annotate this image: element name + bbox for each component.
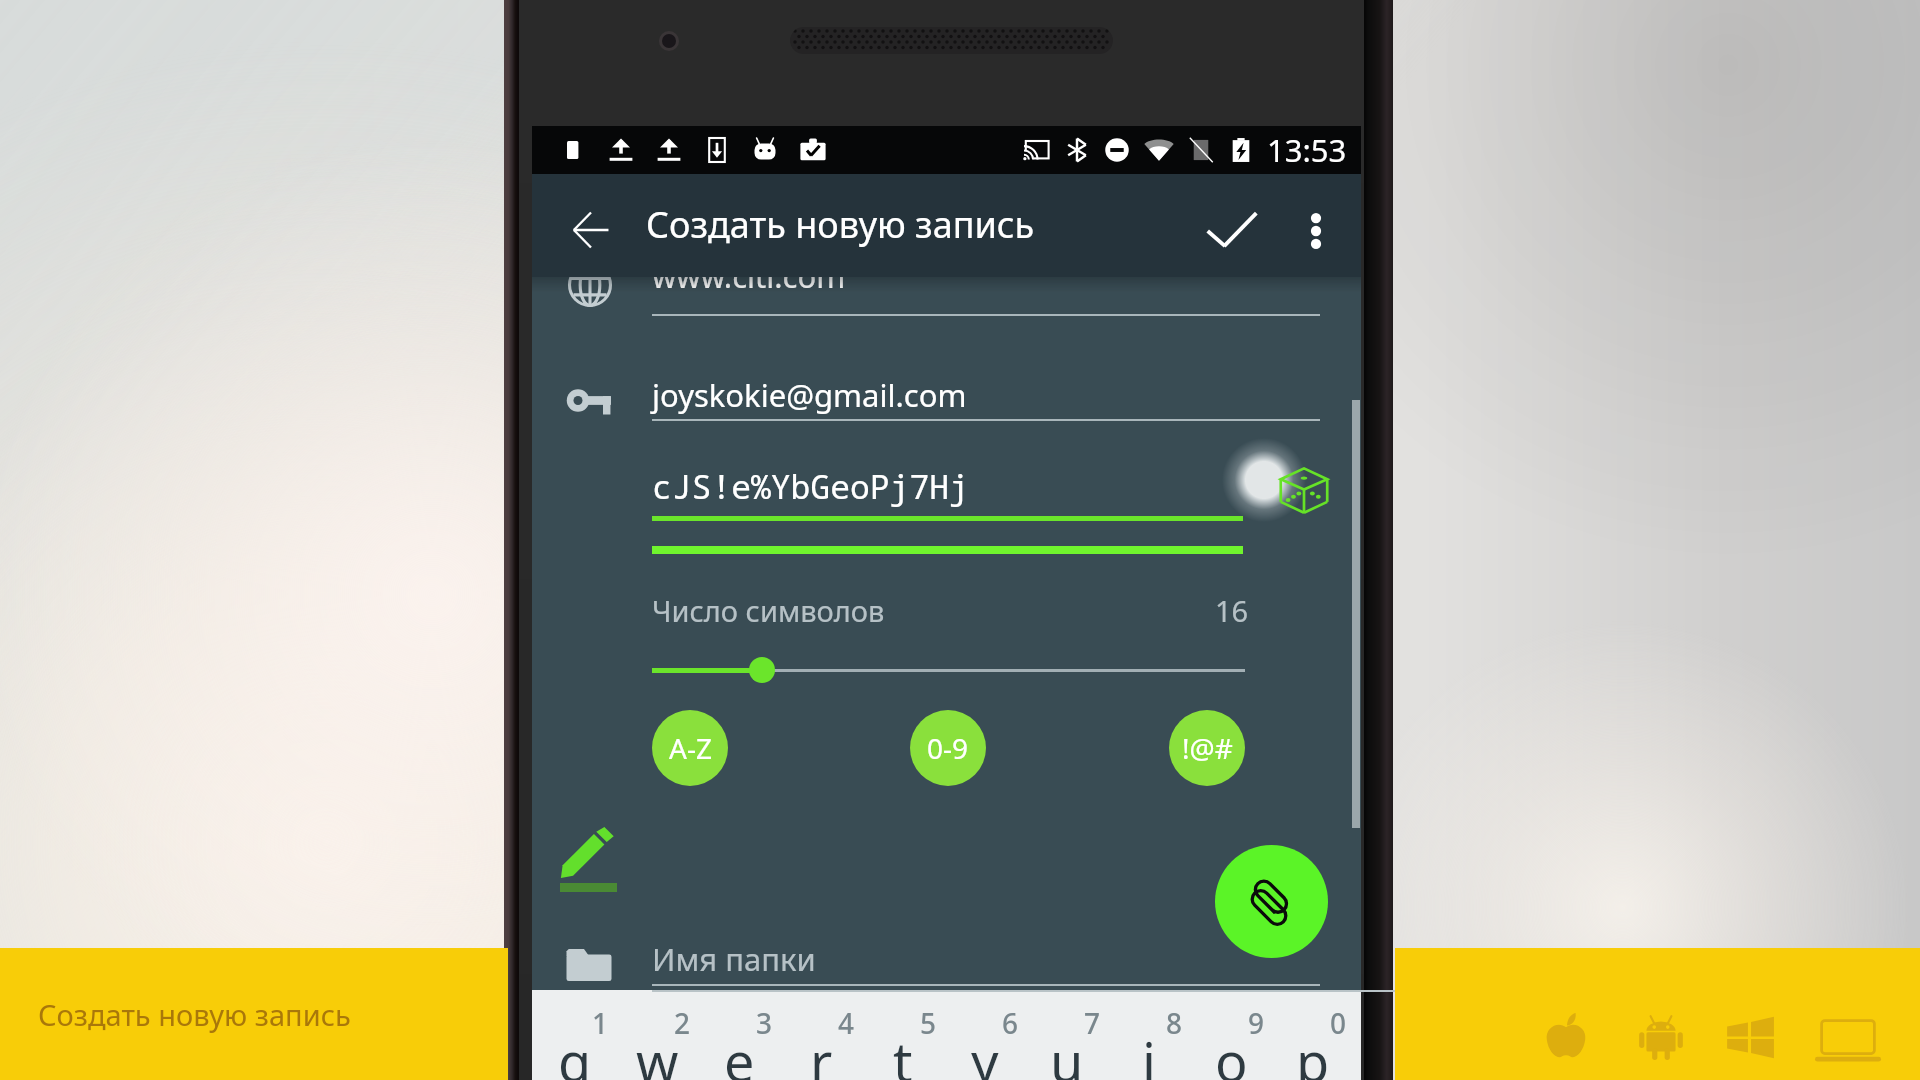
button[interactable]: Attach file bbox=[1215, 845, 1328, 958]
button[interactable]: Windows bbox=[1724, 1011, 1776, 1063]
button[interactable]: iOS bbox=[1542, 1012, 1590, 1060]
staticText: e bbox=[724, 1024, 755, 1080]
staticText: 9 bbox=[1248, 1004, 1265, 1038]
staticText: o bbox=[1215, 1024, 1248, 1080]
button[interactable]: y bbox=[955, 1024, 1015, 1080]
staticText: 4 bbox=[838, 1004, 855, 1038]
button[interactable]: Password length bbox=[652, 657, 1245, 683]
button[interactable]: cJS!e%YbGeoPj7Hj bbox=[652, 456, 1243, 554]
staticText: 13:53 bbox=[1267, 129, 1347, 171]
staticText: !@# bbox=[1182, 729, 1233, 767]
staticText: r bbox=[810, 1024, 833, 1080]
button[interactable]: Имя папки bbox=[652, 930, 1320, 986]
staticText: Создать новую запись bbox=[38, 995, 351, 1034]
staticText: A-Z bbox=[669, 729, 712, 767]
staticText: p bbox=[1296, 1024, 1330, 1080]
staticText: 6 bbox=[1002, 1004, 1019, 1038]
staticText: 2 bbox=[674, 1004, 691, 1038]
button[interactable]: t bbox=[873, 1024, 933, 1080]
button[interactable]: u bbox=[1037, 1024, 1097, 1080]
staticText: u bbox=[1050, 1024, 1084, 1080]
staticText: cJS!e%YbGeoPj7Hj bbox=[652, 464, 969, 509]
button[interactable]: r bbox=[791, 1024, 851, 1080]
staticText: 0 bbox=[1330, 1004, 1347, 1038]
button[interactable]: More options bbox=[1286, 201, 1346, 261]
staticText: 16 bbox=[1215, 591, 1249, 630]
button[interactable]: Generate password bbox=[1277, 463, 1331, 517]
button[interactable]: i bbox=[1119, 1024, 1179, 1080]
button[interactable]: joyskokie@gmail.com bbox=[652, 366, 1320, 421]
staticText: y bbox=[971, 1024, 999, 1080]
button[interactable]: !@# bbox=[1169, 710, 1245, 786]
staticText: 0-9 bbox=[927, 729, 969, 767]
staticText: i bbox=[1142, 1024, 1156, 1080]
staticText: q bbox=[558, 1024, 592, 1080]
staticText: t bbox=[893, 1024, 913, 1080]
staticText: 5 bbox=[920, 1004, 937, 1038]
button[interactable]: q bbox=[545, 1024, 605, 1080]
staticText: 7 bbox=[1084, 1004, 1101, 1038]
button[interactable]: www.citi.com bbox=[652, 246, 1320, 316]
button[interactable]: 0-9 bbox=[910, 710, 986, 786]
button[interactable]: e bbox=[709, 1024, 769, 1080]
button[interactable]: Save bbox=[1196, 195, 1268, 267]
staticText: w bbox=[636, 1024, 679, 1080]
staticText: Число символов bbox=[652, 591, 885, 630]
button[interactable]: w bbox=[627, 1024, 687, 1080]
button[interactable]: o bbox=[1201, 1024, 1261, 1080]
staticText: Имя папки bbox=[652, 938, 816, 980]
button[interactable]: Back bbox=[561, 200, 621, 260]
staticText: 3 bbox=[756, 1004, 773, 1038]
staticText: Создать новую запись bbox=[646, 200, 1035, 249]
staticText: www.citi.com bbox=[652, 255, 846, 297]
staticText: 1 bbox=[592, 1004, 609, 1038]
button[interactable]: Notes bbox=[554, 823, 624, 897]
button[interactable]: A-Z bbox=[652, 710, 728, 786]
button[interactable]: p bbox=[1283, 1024, 1343, 1080]
button[interactable]: Desktop bbox=[1815, 1006, 1881, 1072]
staticText: 8 bbox=[1166, 1004, 1183, 1038]
staticText: joyskokie@gmail.com bbox=[652, 374, 967, 416]
button[interactable]: Android bbox=[1635, 1011, 1687, 1063]
